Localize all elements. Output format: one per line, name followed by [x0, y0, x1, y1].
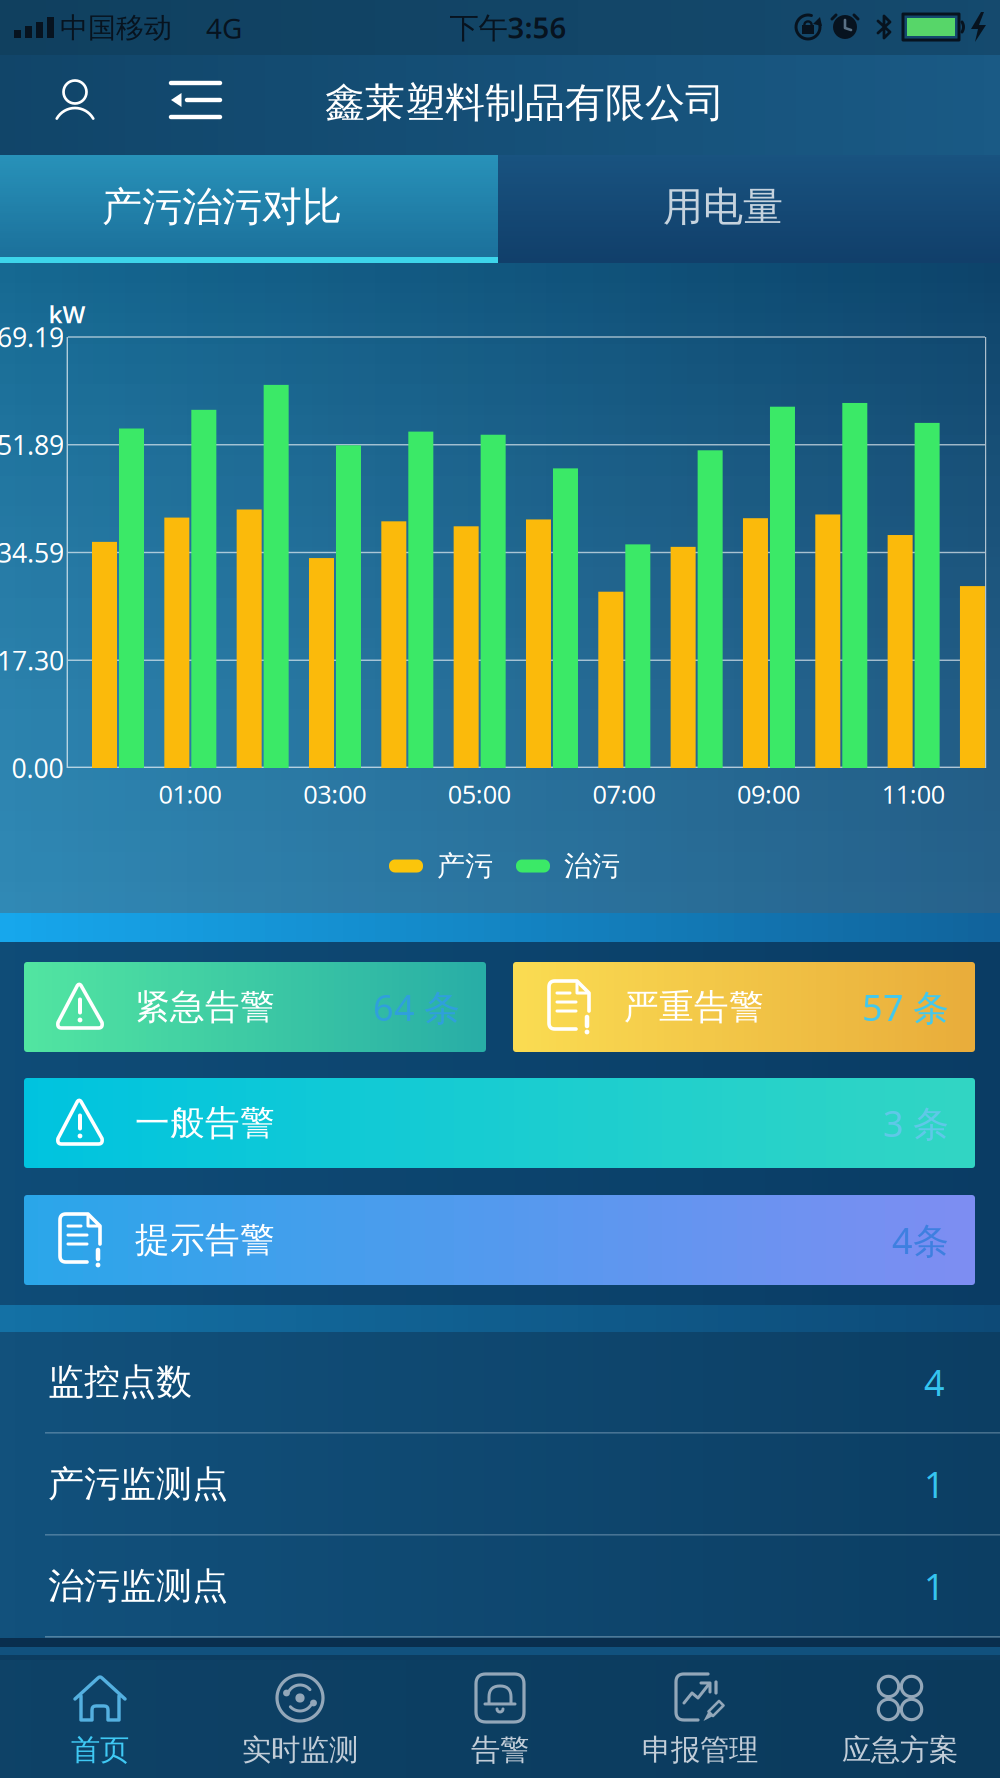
button[interactable]: 实时监测: [200, 1660, 400, 1778]
button[interactable]: 一般告警: [24, 1078, 975, 1168]
staticText: 用电量: [663, 182, 783, 231]
staticText: 64 条: [373, 983, 460, 1031]
staticText: 34.59: [0, 535, 64, 570]
staticText: 实时监测: [242, 1732, 358, 1768]
staticText: 产污: [437, 849, 493, 883]
button[interactable]: 紧急告警: [24, 962, 486, 1052]
staticText: 下午3:56: [449, 7, 566, 46]
staticText: 01:00: [158, 777, 221, 811]
button[interactable]: 产污监测点: [0, 1434, 1000, 1534]
staticText: 严重告警: [624, 986, 764, 1028]
button[interactable]: 严重告警: [513, 962, 975, 1052]
button[interactable]: 首页: [0, 1660, 200, 1778]
staticText: 产污监测点: [48, 1462, 228, 1506]
button[interactable]: 菜单: [164, 70, 228, 130]
button[interactable]: 用户: [40, 67, 110, 137]
staticText: 首页: [71, 1732, 129, 1768]
staticText: kW: [48, 298, 85, 330]
staticText: 3 条: [883, 1099, 949, 1147]
button[interactable]: 告警: [400, 1660, 600, 1778]
staticText: 51.89: [0, 427, 64, 462]
staticText: 11:00: [882, 777, 945, 811]
staticText: 05:00: [448, 777, 511, 811]
staticText: 1: [924, 1562, 945, 1610]
button[interactable]: 提示告警: [24, 1195, 975, 1285]
button[interactable]: 用电量: [498, 155, 1000, 263]
staticText: 4G: [206, 9, 242, 47]
staticText: 1: [924, 1460, 945, 1508]
button[interactable]: 产污治污对比: [0, 155, 498, 263]
staticText: 0.00: [11, 750, 63, 786]
button[interactable]: 监控点数: [0, 1332, 1000, 1432]
staticText: 产污治污对比: [102, 182, 342, 231]
staticText: 09:00: [737, 777, 800, 811]
staticText: 4: [924, 1358, 945, 1406]
staticText: 应急方案: [842, 1732, 958, 1768]
staticText: 治污: [564, 849, 620, 883]
staticText: 17.30: [0, 642, 64, 678]
staticText: 提示告警: [135, 1219, 275, 1261]
staticText: 57 条: [862, 983, 949, 1031]
button[interactable]: 应急方案: [800, 1660, 1000, 1778]
staticText: 一般告警: [135, 1102, 275, 1144]
staticText: 鑫莱塑料制品有限公司: [325, 78, 725, 127]
staticText: 监控点数: [48, 1360, 192, 1404]
staticText: 治污监测点: [48, 1564, 228, 1608]
staticText: 紧急告警: [135, 986, 275, 1028]
staticText: 03:00: [303, 777, 366, 811]
button[interactable]: 治污监测点: [0, 1536, 1000, 1636]
staticText: 07:00: [592, 777, 655, 811]
button[interactable]: 申报管理: [600, 1660, 800, 1778]
staticText: 申报管理: [642, 1732, 758, 1768]
staticText: 4条: [892, 1216, 949, 1264]
staticText: 告警: [471, 1732, 529, 1768]
staticText: 中国移动: [60, 11, 172, 45]
staticText: 69.19: [0, 319, 64, 355]
